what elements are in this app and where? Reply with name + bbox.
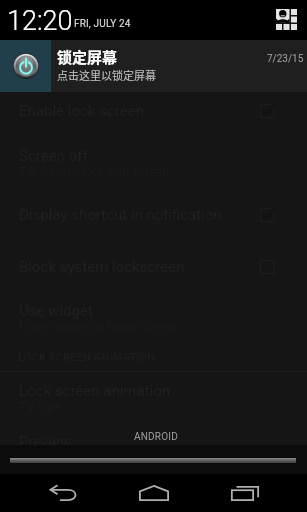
staticText: ANDROID [134,431,178,443]
staticText: Preview [19,433,72,451]
staticText: LOCK SCREEN ANIMATION [18,351,156,364]
staticText: 12:20 [7,5,73,37]
staticText: Lock screen animation [19,382,171,400]
staticText: Use widget [19,302,93,320]
staticText: 点击这里以锁定屏幕 [57,67,156,83]
button[interactable]: Recent apps [222,474,267,512]
button[interactable]: Home [131,474,176,512]
button[interactable]: 锁定屏幕 [0,40,307,92]
button[interactable]: Quick settings [276,9,297,30]
staticText: Screen off [19,147,88,165]
button[interactable]: Back [41,474,86,512]
staticText: Enable lock screen [19,102,144,120]
staticText: 7/23/15 [267,53,304,65]
button[interactable]: Enable lock screen [0,88,307,134]
staticText: FRI, JULY 24 [74,18,131,30]
staticText: Display shortcut in notification [19,206,222,224]
button[interactable]: Preview [0,424,307,472]
staticText: Block system lockscreen [19,258,185,276]
staticText: 锁定屏幕 [57,46,118,68]
